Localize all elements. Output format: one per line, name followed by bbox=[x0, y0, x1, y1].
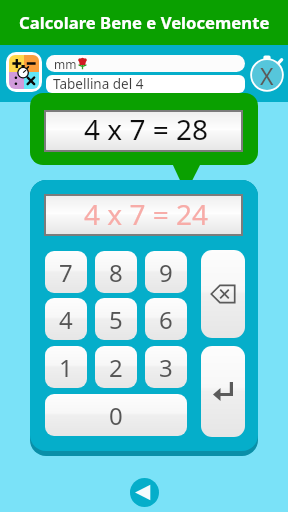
staticText: 4 x 7 = 24 bbox=[84, 195, 209, 233]
button[interactable]: Back bbox=[130, 478, 159, 507]
staticText: 2 bbox=[109, 351, 123, 384]
button[interactable]: 8 bbox=[95, 251, 137, 293]
button[interactable]: 3 bbox=[145, 346, 187, 388]
button[interactable]: Backspace bbox=[201, 250, 245, 338]
button[interactable]: App icon bbox=[9, 55, 39, 89]
button[interactable]: 2 bbox=[95, 346, 137, 388]
staticText: 5 bbox=[109, 303, 123, 336]
button[interactable]: 5 bbox=[95, 298, 137, 340]
staticText: 8 bbox=[109, 256, 123, 289]
button[interactable]: Tabellina del 4 bbox=[46, 75, 245, 93]
staticText: 4 x 7 = 28 bbox=[84, 110, 209, 148]
button[interactable]: Stop bbox=[246, 52, 288, 94]
button[interactable]: 4 bbox=[45, 298, 87, 340]
button[interactable]: Enter bbox=[201, 346, 245, 437]
staticText: 3 bbox=[159, 351, 173, 384]
button[interactable]: 6 bbox=[145, 298, 187, 340]
staticText: 7 bbox=[59, 256, 73, 289]
staticText: Calcolare Bene e Velocemente bbox=[19, 11, 270, 34]
button[interactable]: 7 bbox=[45, 251, 87, 293]
staticText: 1 bbox=[59, 351, 73, 384]
staticText: Tabellina del 4 bbox=[53, 75, 144, 93]
button[interactable]: 1 bbox=[45, 346, 87, 388]
button[interactable]: 9 bbox=[145, 251, 187, 293]
staticText: X bbox=[260, 60, 274, 91]
staticText: mm bbox=[54, 56, 77, 72]
staticText: 9 bbox=[159, 256, 173, 289]
staticText: 0 bbox=[109, 399, 123, 432]
button[interactable]: mm bbox=[46, 55, 245, 72]
button[interactable]: 0 bbox=[45, 394, 187, 436]
staticText: 4 bbox=[59, 303, 73, 336]
staticText: 6 bbox=[159, 303, 173, 336]
